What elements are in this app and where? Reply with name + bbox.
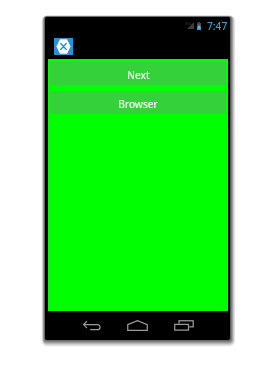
staticText: 3G (185, 21, 191, 27)
staticText: Browser (118, 97, 158, 111)
button[interactable]: App icon (54, 38, 73, 55)
button[interactable]: Browser (50, 91, 226, 114)
button[interactable]: Recent apps (171, 314, 197, 336)
staticText: Next (127, 68, 150, 82)
staticText: 7:47 (207, 19, 228, 33)
button[interactable]: Home (124, 314, 150, 336)
button[interactable]: Next (50, 62, 226, 85)
button[interactable]: Back (79, 314, 105, 336)
